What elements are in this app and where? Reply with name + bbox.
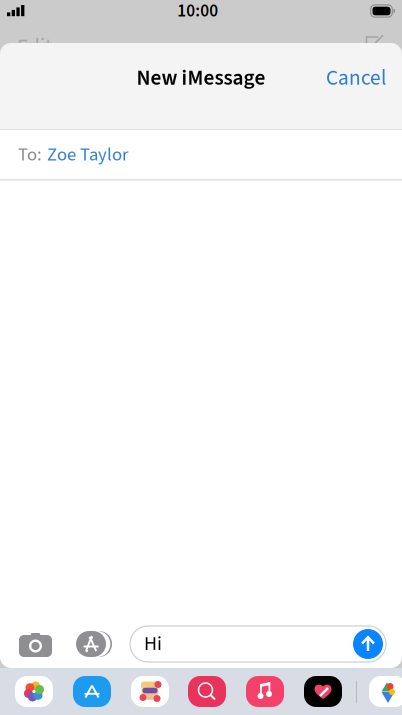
button[interactable]: Memoji bbox=[0, 668, 38, 699]
staticText: Edit bbox=[17, 32, 52, 62]
staticText: Hi bbox=[144, 630, 162, 658]
button[interactable]: Photos bbox=[0, 668, 38, 699]
button[interactable]: Maps bbox=[0, 668, 38, 699]
button[interactable]: App Store bbox=[63, 631, 130, 657]
staticText: To: bbox=[18, 141, 42, 168]
button[interactable]: Take photo bbox=[0, 631, 63, 657]
button[interactable]: Send bbox=[353, 629, 383, 659]
button[interactable]: Images bbox=[0, 668, 38, 699]
button[interactable]: To: bbox=[0, 130, 402, 180]
staticText: Zoe Taylor bbox=[47, 141, 128, 168]
button[interactable]: App Store bbox=[0, 668, 38, 699]
staticText: Cancel bbox=[326, 63, 386, 93]
staticText: New iMessage bbox=[136, 63, 265, 93]
staticText: 10:00 bbox=[177, 0, 218, 23]
button[interactable]: Music bbox=[0, 668, 38, 699]
button[interactable]: Cancel bbox=[310, 52, 402, 104]
button[interactable]: Fitness bbox=[0, 668, 38, 699]
